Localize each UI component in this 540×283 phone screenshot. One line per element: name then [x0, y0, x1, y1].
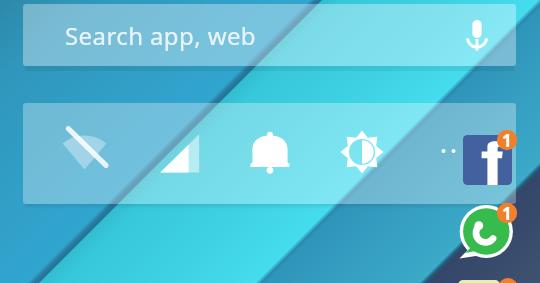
staticText: 1: [502, 202, 512, 224]
button[interactable]: [23, 4, 516, 66]
button[interactable]: Notifications: [248, 129, 292, 175]
button[interactable]: WhatsApp: [458, 203, 515, 260]
button[interactable]: More settings: [430, 129, 474, 175]
button[interactable]: Brightness: [340, 130, 384, 174]
other: Facebook notifications: [496, 129, 518, 151]
staticText: 1: [502, 129, 512, 151]
button[interactable]: Wi-Fi off: [60, 126, 110, 174]
button[interactable]: Facebook: [463, 135, 512, 185]
button[interactable]: Voice search: [455, 8, 499, 60]
staticText: Search app, web: [65, 19, 257, 52]
button[interactable]: Mobile signal: [157, 129, 203, 175]
other: WhatsApp notifications: [496, 202, 518, 224]
